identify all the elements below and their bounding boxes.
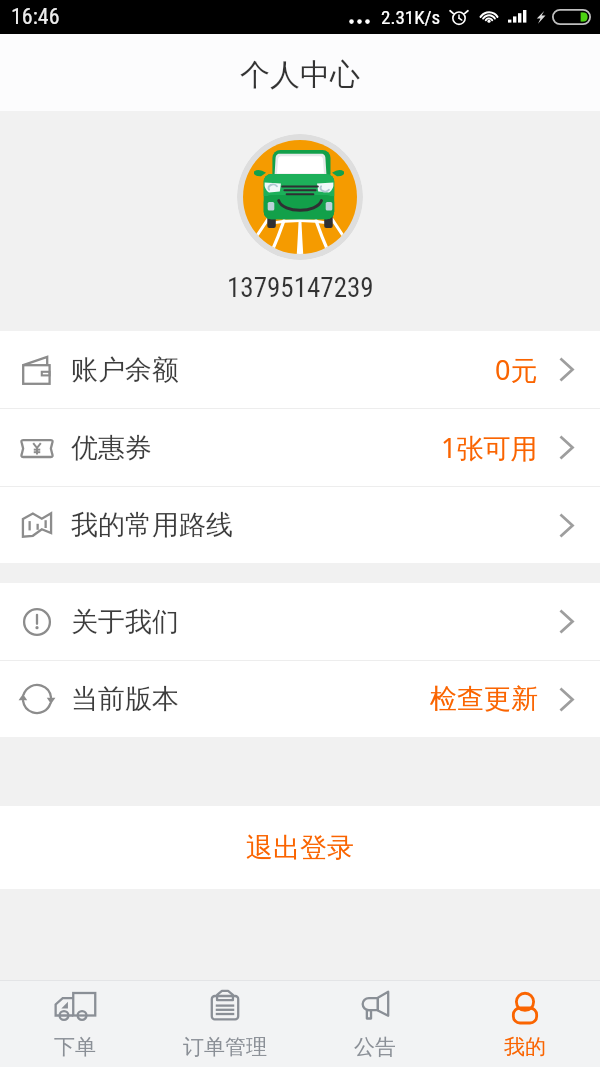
button[interactable]: 订单管理 bbox=[150, 981, 300, 1067]
button[interactable]: 优惠券 bbox=[0, 409, 600, 486]
button[interactable]: 退出登录 bbox=[0, 806, 600, 889]
staticText: 关于我们 bbox=[71, 605, 179, 639]
button[interactable]: 我的常用路线 bbox=[0, 487, 600, 563]
staticText: 我的 bbox=[504, 1034, 546, 1060]
staticText: 1张可用 bbox=[441, 429, 538, 466]
staticText: 16:46 bbox=[11, 4, 60, 30]
staticText: 2.31K/s bbox=[381, 6, 441, 28]
staticText: 订单管理 bbox=[183, 1034, 267, 1060]
button[interactable]: 关于我们 bbox=[0, 583, 600, 660]
staticText: 13795147239 bbox=[227, 272, 374, 304]
staticText: 下单 bbox=[54, 1034, 96, 1060]
button[interactable]: 我的 bbox=[450, 981, 600, 1067]
staticText: 我的常用路线 bbox=[71, 508, 233, 542]
staticText: 公告 bbox=[354, 1034, 396, 1060]
staticText: 0元 bbox=[495, 351, 538, 388]
staticText: 当前版本 bbox=[71, 682, 179, 716]
staticText: 退出登录 bbox=[246, 831, 354, 865]
staticText: 账户余额 bbox=[71, 353, 179, 387]
button[interactable]: Profile avatar bbox=[237, 134, 363, 260]
staticText: 优惠券 bbox=[71, 431, 152, 465]
button[interactable]: 下单 bbox=[0, 981, 150, 1067]
staticText: 检查更新 bbox=[430, 682, 538, 716]
button[interactable]: 账户余额 bbox=[0, 331, 600, 408]
button[interactable]: 当前版本 bbox=[0, 661, 600, 737]
staticText: 个人中心 bbox=[240, 56, 360, 94]
button[interactable]: 公告 bbox=[300, 981, 450, 1067]
